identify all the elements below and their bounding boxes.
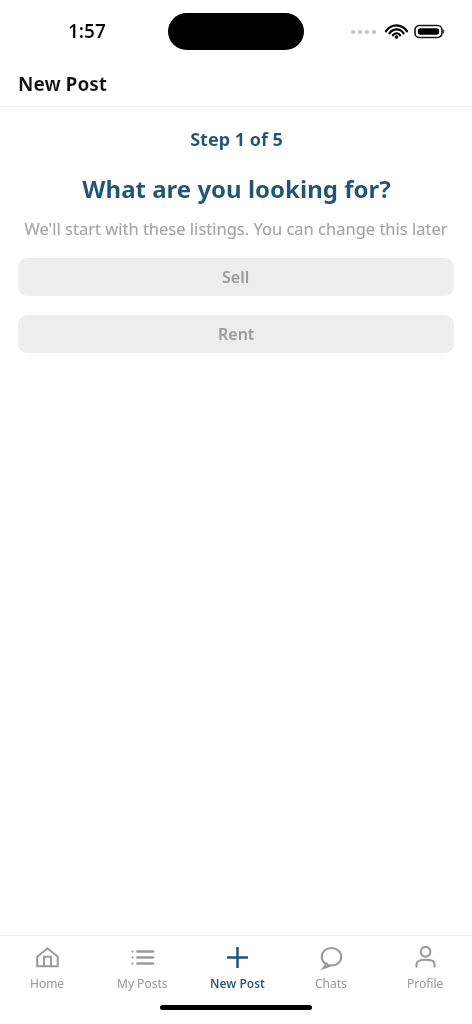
staticText: 1:57 [68, 18, 106, 44]
staticText: Rent [218, 323, 255, 345]
staticText: New Post [210, 975, 265, 991]
button[interactable]: Rent [18, 315, 454, 353]
button[interactable]: Home [0, 936, 95, 998]
button[interactable]: Chats [284, 936, 378, 998]
staticText: What are you looking for? [82, 172, 391, 205]
staticText: Chats [315, 975, 347, 991]
button[interactable]: Sell [18, 258, 454, 296]
staticText: My Posts [117, 975, 168, 991]
staticText: Home [30, 975, 65, 991]
staticText: New Post [18, 71, 108, 97]
staticText: Step 1 of 5 [190, 127, 283, 152]
staticText: We'll start with these listings. You can… [0, 217, 472, 239]
staticText: Sell [222, 266, 250, 288]
button[interactable]: My Posts [95, 936, 190, 998]
staticText: Profile [407, 975, 444, 991]
button[interactable]: Profile [378, 936, 472, 998]
button[interactable]: New Post [190, 936, 284, 998]
